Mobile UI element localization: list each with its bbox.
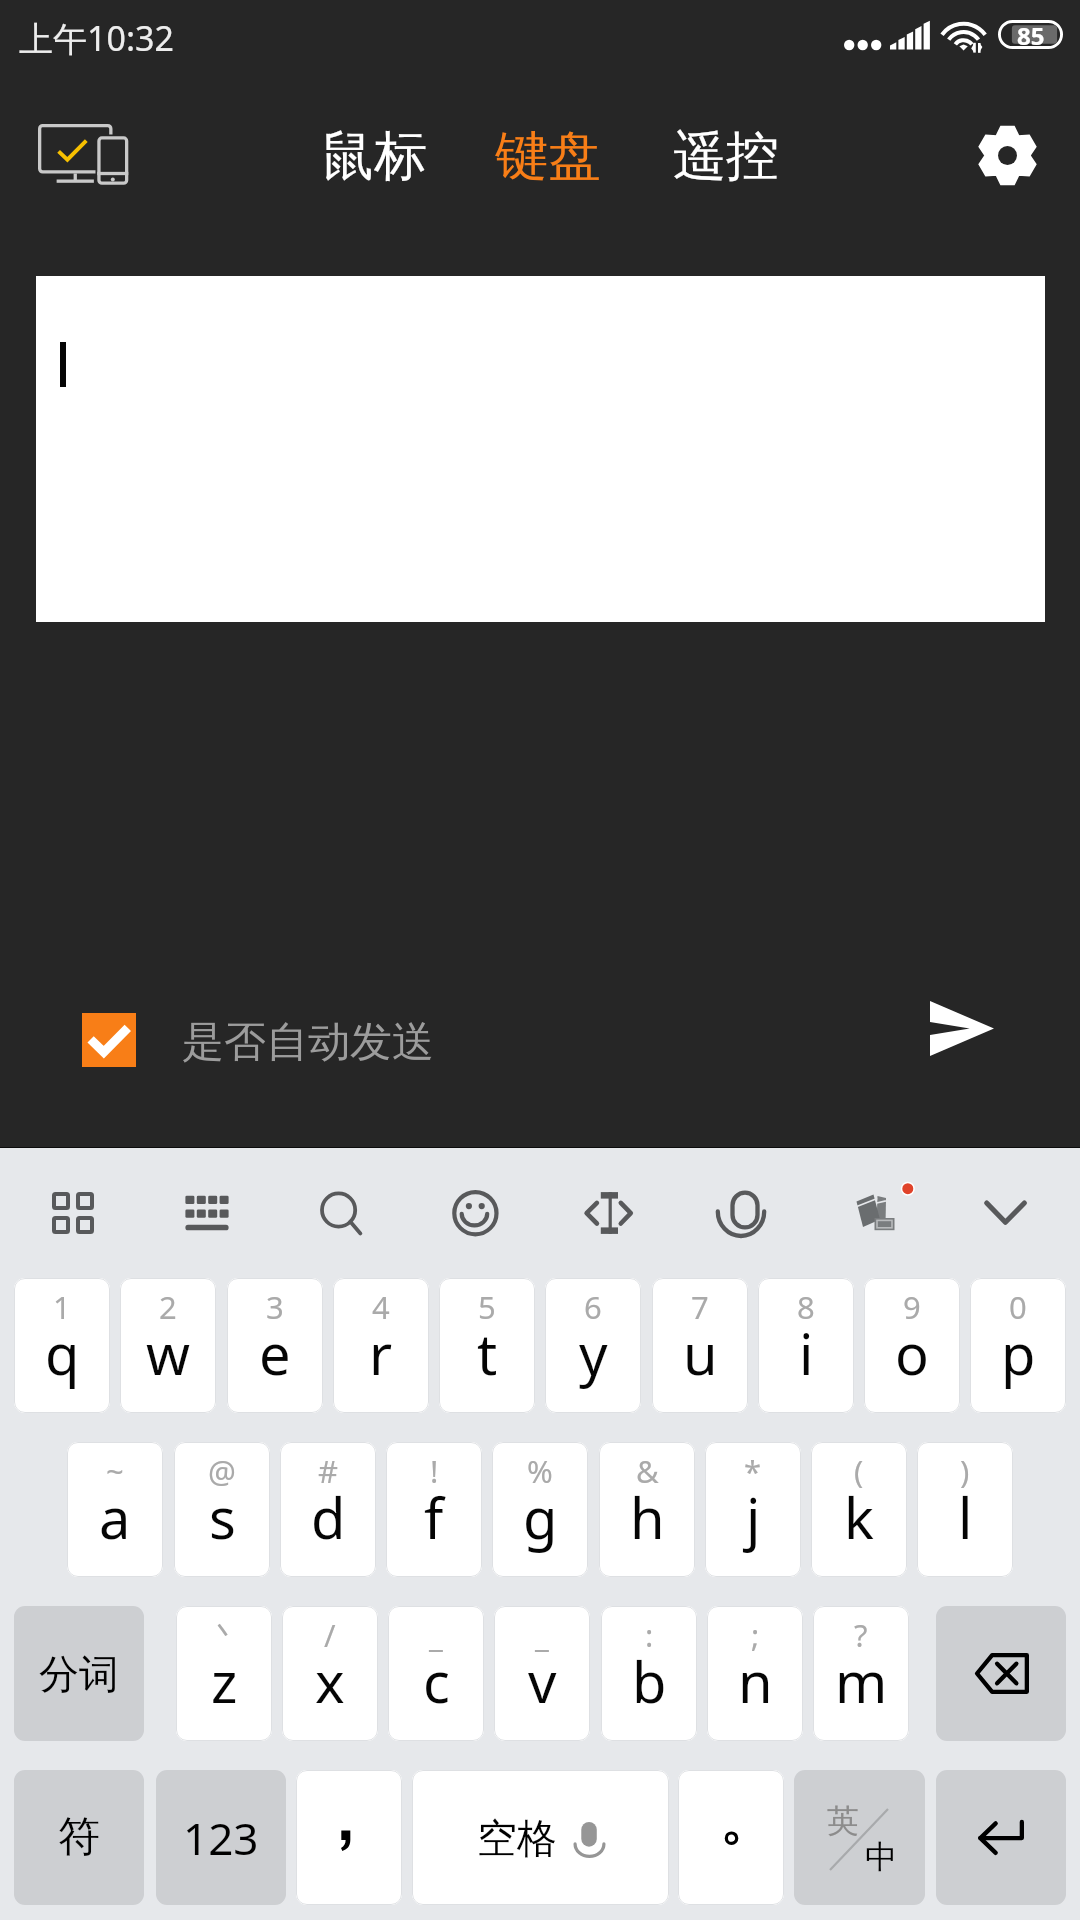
button[interactable]: _: [494, 1606, 590, 1741]
button[interactable]: ): [917, 1442, 1013, 1577]
staticText: 8: [797, 1286, 815, 1328]
button[interactable]: grid: [25, 1165, 121, 1261]
staticText: !: [430, 1450, 439, 1492]
button[interactable]: 4: [333, 1278, 429, 1413]
staticText: h: [630, 1479, 665, 1555]
other: comma: [296, 1770, 402, 1905]
staticText: s: [209, 1479, 236, 1555]
staticText: ): [960, 1450, 970, 1492]
button[interactable]: search: [292, 1165, 388, 1261]
button[interactable]: 空格: [412, 1770, 669, 1905]
button[interactable]: 分词: [14, 1606, 144, 1741]
button[interactable]: ad: [826, 1165, 922, 1261]
other: Backspace: [974, 1653, 1029, 1694]
staticText: 符: [58, 1811, 100, 1864]
button[interactable]: down: [960, 1165, 1056, 1261]
staticText: g: [523, 1479, 558, 1555]
button[interactable]: 3: [227, 1278, 323, 1413]
staticText: 1: [53, 1286, 71, 1328]
button[interactable]: Connected devices: [16, 106, 150, 204]
staticText: &: [636, 1450, 659, 1492]
staticText: 5: [478, 1286, 496, 1328]
button[interactable]: 鼠标: [309, 110, 438, 202]
button[interactable]: 1: [14, 1278, 110, 1413]
staticText: #: [318, 1450, 339, 1492]
button[interactable]: Backspace: [936, 1606, 1066, 1741]
button[interactable]: 5: [439, 1278, 535, 1413]
staticText: 丶: [209, 1614, 240, 1653]
button[interactable]: ;: [707, 1606, 803, 1741]
other: Enter: [978, 1822, 1024, 1853]
button[interactable]: Language toggle: [794, 1770, 925, 1905]
button[interactable]: _: [388, 1606, 484, 1741]
staticText: 上午10:32: [19, 15, 174, 61]
staticText: ?: [854, 1614, 868, 1656]
staticText: q: [45, 1315, 80, 1391]
button[interactable]: period: [678, 1770, 784, 1905]
staticText: 0: [1009, 1286, 1027, 1328]
staticText: _: [429, 1614, 443, 1656]
staticText: @: [208, 1450, 236, 1492]
button[interactable]: 6: [545, 1278, 641, 1413]
staticText: 分词: [39, 1649, 119, 1699]
button[interactable]: Enter: [936, 1770, 1066, 1905]
staticText: _: [535, 1614, 549, 1656]
button[interactable]: smile: [426, 1165, 522, 1261]
staticText: %: [527, 1450, 553, 1492]
button[interactable]: comma: [296, 1770, 402, 1905]
button[interactable]: &: [599, 1442, 695, 1577]
button[interactable]: (: [811, 1442, 907, 1577]
button[interactable]: *: [705, 1442, 801, 1577]
staticText: 中: [865, 1837, 897, 1877]
button[interactable]: !: [386, 1442, 482, 1577]
staticText: 鼠标: [321, 123, 427, 190]
staticText: 空格: [477, 1813, 557, 1863]
button[interactable]: 遥控: [661, 110, 790, 202]
button[interactable]: 8: [758, 1278, 854, 1413]
button[interactable]: kb: [159, 1165, 255, 1261]
button[interactable]: :: [601, 1606, 697, 1741]
button[interactable]: Settings: [955, 106, 1059, 204]
button[interactable]: 是否自动发送: [180, 1014, 436, 1071]
staticText: d: [311, 1479, 346, 1555]
staticText: 3: [266, 1286, 284, 1328]
staticText: m: [835, 1643, 888, 1719]
staticText: n: [738, 1643, 773, 1719]
staticText: ~: [106, 1450, 124, 1492]
button[interactable]: 符: [14, 1770, 144, 1905]
staticText: t: [477, 1315, 498, 1391]
button[interactable]: 丶: [176, 1606, 272, 1741]
staticText: 是否自动发送: [182, 1016, 434, 1069]
staticText: e: [259, 1315, 291, 1391]
staticText: u: [683, 1315, 718, 1391]
staticText: f: [424, 1479, 444, 1555]
staticText: c: [423, 1643, 450, 1719]
staticText: 85: [1017, 19, 1045, 48]
button[interactable]: Send: [898, 983, 1026, 1073]
button[interactable]: /: [282, 1606, 378, 1741]
button[interactable]: cursor: [559, 1165, 655, 1261]
staticText: r: [369, 1315, 393, 1391]
button[interactable]: ~: [67, 1442, 163, 1577]
staticText: *: [744, 1450, 762, 1492]
button[interactable]: 键盘: [483, 110, 612, 202]
button[interactable]: @: [174, 1442, 270, 1577]
button[interactable]: Auto send checkbox: [72, 1003, 146, 1077]
button[interactable]: mic: [693, 1165, 789, 1261]
button[interactable]: 123: [156, 1770, 286, 1905]
button[interactable]: ?: [813, 1606, 909, 1741]
button[interactable]: 7: [652, 1278, 748, 1413]
button[interactable]: #: [280, 1442, 376, 1577]
staticText: a: [99, 1479, 131, 1555]
staticText: /: [324, 1614, 336, 1656]
button[interactable]: 0: [970, 1278, 1066, 1413]
staticText: 7: [691, 1286, 709, 1328]
button[interactable]: 2: [120, 1278, 216, 1413]
other: period: [678, 1770, 784, 1905]
button[interactable]: 9: [864, 1278, 960, 1413]
staticText: :: [645, 1614, 654, 1656]
button[interactable]: %: [492, 1442, 588, 1577]
staticText: p: [1001, 1315, 1036, 1391]
staticText: b: [632, 1643, 667, 1719]
staticText: 9: [903, 1286, 921, 1328]
